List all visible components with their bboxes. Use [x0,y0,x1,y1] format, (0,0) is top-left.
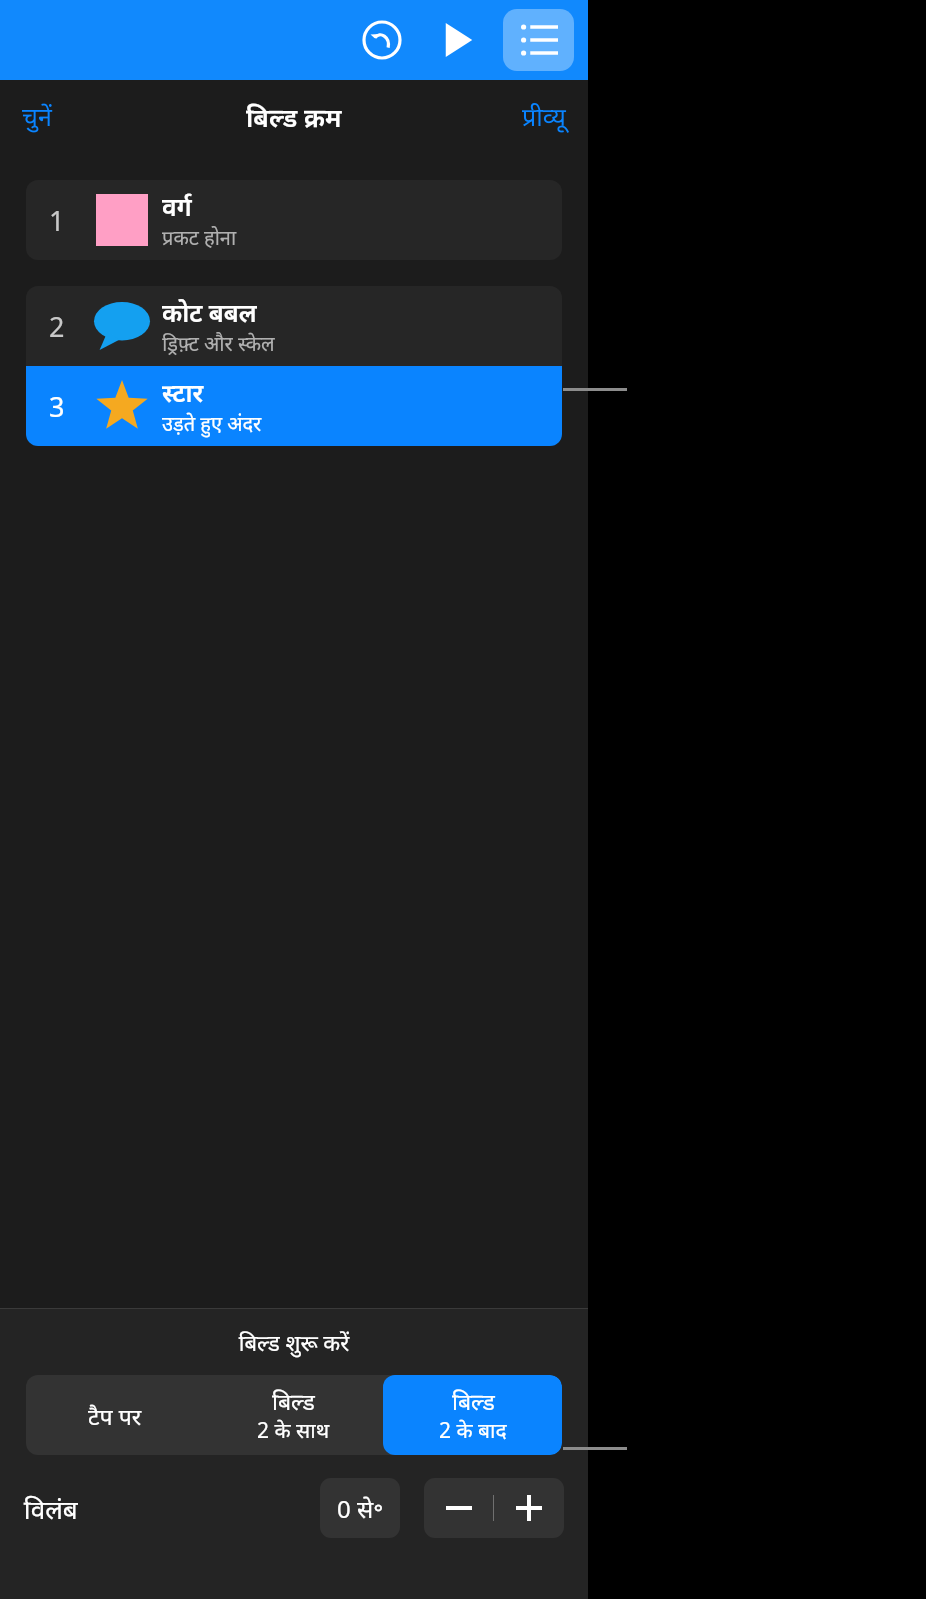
staticText: 2 [49,308,65,345]
button[interactable]: बिल्ड [204,1375,383,1455]
staticText: प्रकट होना [162,224,237,251]
button[interactable]: Undo [353,11,411,69]
button[interactable]: 0 से॰ [320,1478,400,1538]
button[interactable]: Build order list [503,9,574,71]
staticText: बिल्ड [452,1385,495,1416]
button[interactable]: 3 [26,366,562,446]
button[interactable]: 2 [26,286,562,366]
staticText: 0 से॰ [337,1492,384,1525]
staticText: 2 के साथ [257,1416,330,1445]
button[interactable]: बिल्ड [383,1375,562,1455]
staticText: विलंब [24,1491,78,1526]
button[interactable]: Decrease delay [424,1478,493,1538]
staticText: टैप पर [88,1400,142,1431]
button[interactable]: चुनें [0,91,74,141]
staticText: कोट बबल [162,295,257,329]
staticText: स्टार [162,375,204,409]
button[interactable]: प्रीव्यू [500,91,588,141]
staticText: वर्ग [162,189,192,223]
staticText: उड़ते हुए अंदर [162,410,262,437]
staticText: 2 के बाद [439,1416,507,1445]
staticText: ड्रिफ़्ट और स्केल [162,330,275,357]
button[interactable]: Increase delay [494,1478,564,1538]
button[interactable]: 1 [26,180,562,260]
staticText: प्रीव्यू [522,99,566,133]
staticText: बिल्ड शुरू करें [0,1327,588,1357]
staticText: 3 [49,388,65,425]
button[interactable]: टैप पर [26,1375,204,1455]
staticText: 1 [49,202,65,239]
staticText: बिल्ड [272,1385,315,1416]
button[interactable]: Play [429,11,487,69]
staticText: बिल्ड क्रम [246,99,342,134]
staticText: चुनें [22,99,52,133]
